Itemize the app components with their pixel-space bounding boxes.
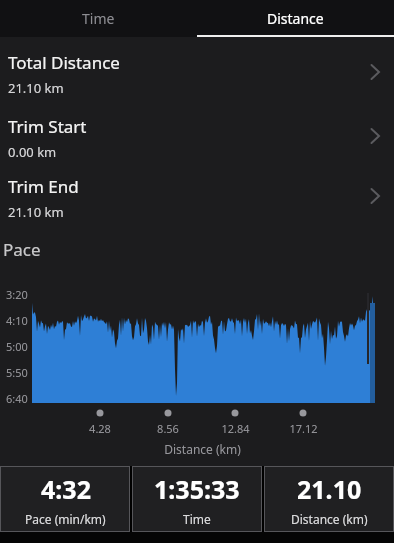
staticText: 21.10 [297, 472, 362, 506]
staticText: 6:40 [6, 391, 28, 406]
staticText: 1:35:33 [154, 472, 240, 506]
button[interactable]: Trim Start [0, 97, 394, 157]
staticText: 4:32 [41, 472, 91, 506]
button[interactable]: Trim End [0, 157, 394, 217]
staticText: Pace [3, 238, 41, 261]
button[interactable]: Time [0, 0, 197, 37]
staticText: Distance [267, 9, 324, 28]
staticText: 21.10 km [8, 203, 64, 217]
button[interactable]: 21.10 [264, 466, 394, 532]
button[interactable]: Distance [197, 0, 394, 37]
staticText: Time [82, 9, 115, 28]
button[interactable]: Total Distance [0, 37, 394, 97]
staticText: Distance (km) [291, 511, 368, 527]
button[interactable]: 4:32 [0, 466, 130, 532]
staticText: Pace (min/km) [25, 511, 106, 527]
staticText: 0.00 km [8, 143, 57, 157]
staticText: Trim End [8, 175, 79, 198]
staticText: Distance (km) [164, 441, 241, 457]
staticText: Time [183, 511, 211, 527]
staticText: 21.10 km [8, 79, 64, 97]
staticText: 4.28 [89, 421, 111, 436]
staticText: 5:00 [6, 339, 28, 354]
staticText: 17.12 [289, 421, 318, 436]
button[interactable]: 1:35:33 [132, 466, 262, 532]
staticText: Trim Start [8, 115, 87, 138]
staticText: 8.56 [157, 421, 179, 436]
staticText: 12.84 [221, 421, 250, 436]
staticText: 4:10 [6, 313, 28, 328]
staticText: 5:50 [6, 365, 28, 380]
staticText: Total Distance [8, 51, 120, 74]
staticText: 3:20 [6, 287, 28, 302]
